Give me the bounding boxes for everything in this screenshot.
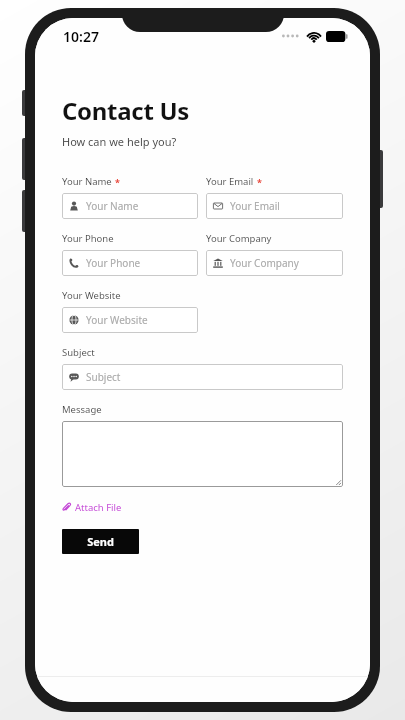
staticText: Your Company [230,256,299,270]
staticText: Your Website [62,289,121,302]
staticText: Attach File [75,501,122,514]
button[interactable] [62,421,343,487]
staticText: Your Name [62,175,112,188]
button[interactable]: Your Website [62,307,198,333]
staticText: Subject [62,346,95,359]
staticText: Your Company [206,232,272,245]
button[interactable]: Subject [62,364,343,390]
button[interactable]: Attach File [62,499,122,516]
staticText: 10:27 [63,27,99,46]
button[interactable]: Your Email [206,193,343,219]
staticText: Your Email [230,199,280,213]
button[interactable]: Your Name [62,193,198,219]
button[interactable]: Your Phone [62,250,198,276]
staticText: Your Phone [86,256,141,270]
staticText: Send [87,534,114,549]
staticText: Your Email [206,175,254,188]
staticText: * [115,176,120,188]
staticText: Message [62,403,102,416]
staticText: Your Name [86,199,139,213]
staticText: Your Website [86,313,148,327]
button[interactable]: Your Company [206,250,343,276]
staticText: How can we help you? [62,134,177,149]
staticText: Subject [86,370,121,384]
staticText: Your Phone [62,232,114,245]
staticText: Contact Us [62,94,190,127]
button[interactable]: Send [62,529,139,554]
staticText: * [257,176,262,188]
